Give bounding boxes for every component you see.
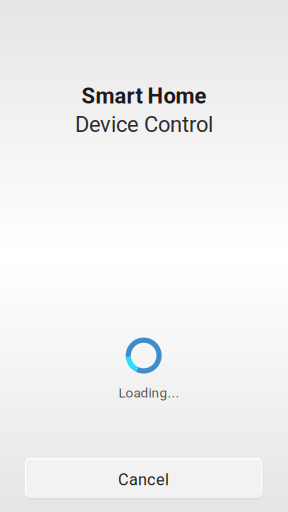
staticText: Device Control <box>75 112 213 137</box>
staticText: Loading... <box>118 385 179 401</box>
staticText: Cancel <box>118 470 169 489</box>
button[interactable]: Cancel <box>25 458 262 500</box>
staticText: Smart Home <box>81 83 206 109</box>
